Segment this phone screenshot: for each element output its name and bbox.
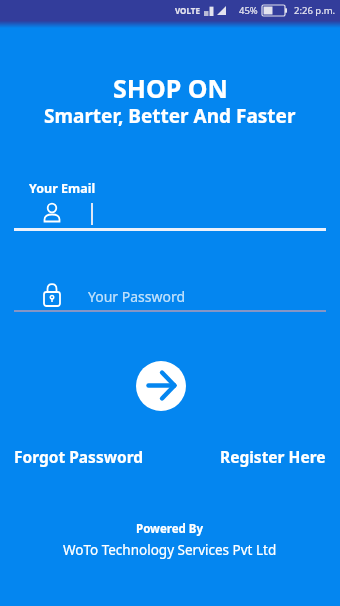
staticText: VOLTE	[175, 5, 200, 16]
button[interactable]: Forgot Password	[14, 446, 144, 467]
button[interactable]	[14, 198, 326, 228]
staticText: Your Password	[88, 287, 186, 306]
staticText: Powered By	[136, 521, 204, 537]
button[interactable]: Your Password	[14, 280, 326, 310]
staticText: WoTo Technology Services Pvt Ltd	[63, 541, 277, 559]
staticText: 2:26 p.m.	[294, 4, 336, 17]
staticText: Your Email	[29, 180, 96, 197]
button[interactable]	[136, 361, 186, 411]
staticText: SHOP ON	[113, 71, 228, 105]
staticText: 45%	[239, 4, 258, 17]
staticText: Smarter, Better And Faster	[44, 103, 296, 129]
button[interactable]: Register Here	[220, 446, 326, 467]
